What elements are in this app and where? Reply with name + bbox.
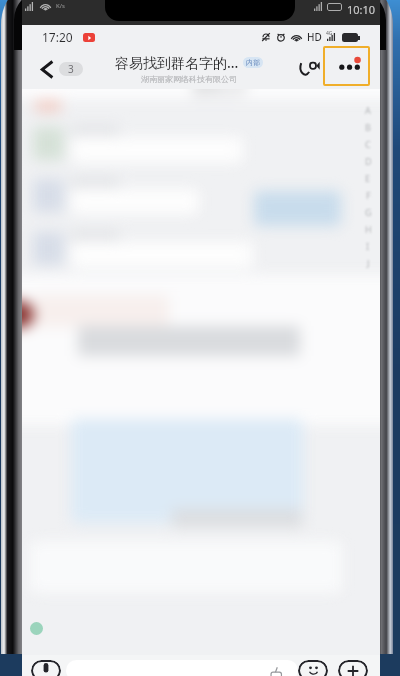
button[interactable]: Back — [31, 49, 63, 89]
staticText: K/s — [56, 2, 65, 10]
staticText: 2020-05-25 1 — [192, 89, 247, 97]
staticText: HD — [307, 30, 322, 44]
button[interactable]: More options — [338, 660, 368, 676]
staticText: D — [365, 155, 372, 167]
staticText: A — [365, 104, 371, 116]
staticText: 湖南丽家网络科技有限公司 — [141, 74, 237, 84]
staticText: B — [365, 121, 371, 133]
button[interactable] — [66, 660, 298, 676]
staticText: H — [365, 223, 372, 235]
staticText: J — [367, 257, 370, 269]
staticText: 4G — [326, 30, 333, 37]
staticText: C — [365, 138, 371, 150]
button[interactable]: Emoji — [298, 660, 328, 676]
staticText: I — [366, 240, 370, 252]
staticText: 容易找到群名字的... — [115, 53, 239, 72]
button[interactable]: Voice input — [31, 660, 61, 676]
button[interactable]: More — [323, 46, 370, 86]
staticText: 内部 — [246, 58, 260, 67]
staticText: 17:20 — [42, 29, 73, 45]
staticText: G — [365, 206, 372, 218]
staticText: F — [366, 189, 371, 201]
staticText: E — [365, 172, 371, 184]
staticText: 10:10 — [347, 2, 376, 17]
button[interactable]: 3 — [59, 62, 83, 76]
staticText: 3 — [68, 62, 74, 76]
button[interactable]: Video call — [294, 53, 325, 85]
